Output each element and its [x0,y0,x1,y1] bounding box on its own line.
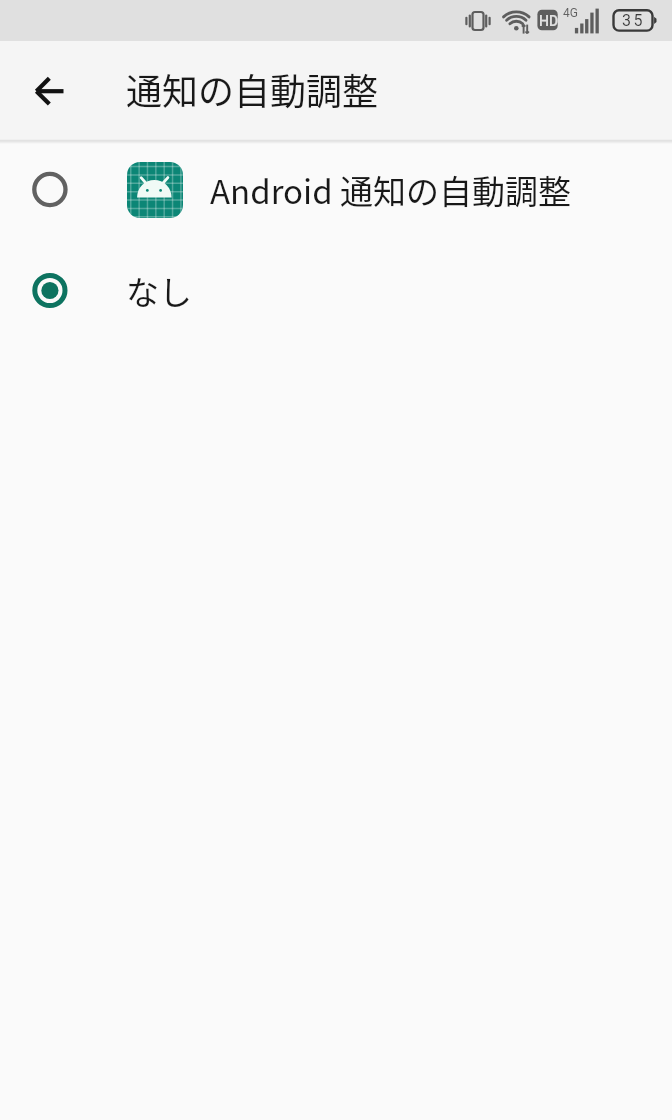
staticText: 4G [563,6,578,20]
staticText: Android 通知の自動調整 [210,166,572,214]
staticText: HD [539,13,559,29]
button[interactable]: なし [0,243,672,338]
staticText: なし [126,267,192,315]
staticText: 35 [622,11,646,30]
staticText: 通知の自動調整 [126,63,379,115]
button[interactable]: Back [17,58,81,122]
button[interactable]: Android 通知の自動調整 [0,142,672,237]
